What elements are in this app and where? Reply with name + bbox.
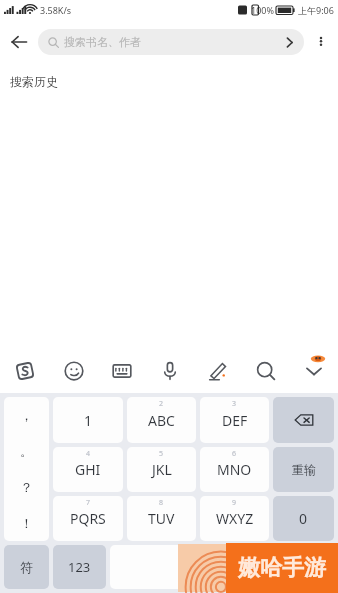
staticText: 7 <box>86 498 91 508</box>
button[interactable]: ！ <box>4 505 49 541</box>
staticText: ？ <box>20 479 33 495</box>
staticText: 100% <box>251 4 274 16</box>
button[interactable]: 重输 <box>273 447 334 492</box>
staticText: MNO <box>217 460 252 479</box>
button[interactable]: 0 <box>273 496 334 541</box>
staticText: 3 <box>232 399 237 409</box>
staticText: 搜索历史 <box>10 74 58 89</box>
staticText: 6 <box>232 449 237 459</box>
button[interactable]: WXYZ <box>200 496 269 541</box>
button[interactable]: ？ <box>4 469 49 505</box>
button[interactable]: Collapse keyboard <box>290 349 338 393</box>
button[interactable]: GHI <box>53 447 123 492</box>
button[interactable]: Sogou input <box>0 349 49 393</box>
staticText: JKL <box>152 460 172 479</box>
staticText: 2 <box>159 399 164 409</box>
staticText: ！ <box>20 515 33 531</box>
button[interactable]: DEF <box>200 397 269 443</box>
staticText: 0 <box>299 509 308 528</box>
button[interactable]: Search <box>242 349 290 393</box>
button[interactable]: Emoji <box>49 349 98 393</box>
staticText: 搜索书名、作者 <box>64 35 141 49</box>
staticText: TUV <box>148 509 175 528</box>
button[interactable]: MNO <box>200 447 269 492</box>
button[interactable]: Keyboard layout <box>98 349 146 393</box>
button[interactable]: ， <box>4 397 49 433</box>
button[interactable]: 123 <box>53 545 106 589</box>
button[interactable]: 搜索书名、作者 <box>38 29 304 55</box>
staticText: DEF <box>222 411 248 430</box>
staticText: 上午9:06 <box>298 4 334 16</box>
staticText: 。 <box>20 443 33 459</box>
staticText: 符 <box>20 559 33 575</box>
button[interactable]: Search <box>274 29 304 55</box>
button[interactable]: Backspace <box>273 397 334 443</box>
staticText: 5 <box>159 449 164 459</box>
staticText: 8 <box>159 498 164 508</box>
button[interactable]: Space <box>110 545 269 589</box>
staticText: 重输 <box>292 462 316 477</box>
button[interactable]: 1 <box>53 397 123 443</box>
staticText: 9 <box>232 498 237 508</box>
button[interactable]: PQRS <box>53 496 123 541</box>
button[interactable]: 符 <box>4 545 49 589</box>
staticText: 3.58K/s <box>40 4 72 16</box>
staticText: WXYZ <box>216 509 254 528</box>
staticText: 123 <box>68 558 91 576</box>
button[interactable]: ABC <box>127 397 196 443</box>
button[interactable]: 。 <box>4 433 49 469</box>
button[interactable]: Back <box>0 23 38 61</box>
button[interactable]: More options <box>304 25 338 59</box>
staticText: 嫩哈手游 <box>238 554 326 582</box>
button[interactable]: Handwriting <box>194 349 242 393</box>
button[interactable]: JKL <box>127 447 196 492</box>
button[interactable]: Voice input <box>146 349 194 393</box>
staticText: GHI <box>75 460 101 479</box>
staticText: 4 <box>86 449 91 459</box>
staticText: PQRS <box>70 509 106 528</box>
staticText: ， <box>20 407 33 423</box>
staticText: ABC <box>148 411 175 430</box>
staticText: 1 <box>84 411 93 430</box>
button[interactable]: Enter <box>273 545 334 589</box>
button[interactable]: TUV <box>127 496 196 541</box>
